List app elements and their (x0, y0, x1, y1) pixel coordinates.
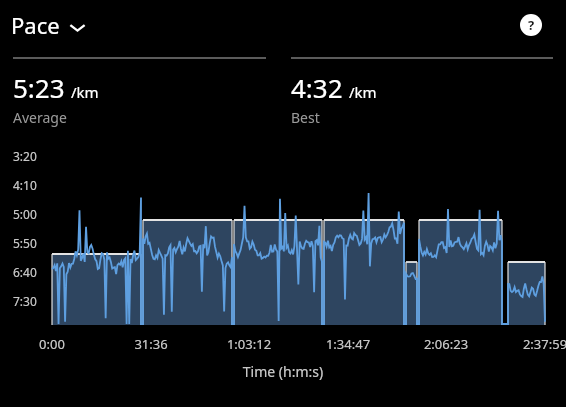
staticText: /km (349, 82, 377, 102)
staticText: 4:10 (13, 177, 37, 193)
staticText: 1:34:47 (316, 335, 380, 353)
staticText: 3:20 (13, 148, 37, 164)
button[interactable]: 5:23 (13, 57, 266, 127)
staticText: 5:23 (13, 70, 65, 105)
staticText: 4:32 (291, 70, 343, 105)
staticText: 1:03:12 (217, 335, 281, 353)
staticText: 31:36 (119, 335, 183, 353)
staticText: 2:37:59 (513, 335, 566, 353)
staticText: 0:00 (20, 335, 84, 353)
staticText: Best (291, 108, 320, 127)
button[interactable]: Pace (11, 7, 90, 43)
staticText: /km (71, 82, 99, 102)
staticText: Time (h:m:s) (0, 362, 566, 381)
button[interactable]: Help (518, 12, 544, 38)
staticText: 6:40 (13, 264, 37, 280)
staticText: 7:30 (13, 293, 37, 309)
staticText: Average (13, 108, 67, 127)
staticText: 2:06:23 (414, 335, 478, 353)
staticText: 5:50 (13, 235, 37, 251)
staticText: 5:00 (13, 206, 37, 222)
staticText: Pace (11, 10, 60, 40)
button[interactable]: 4:32 (291, 57, 553, 127)
staticText: ? (528, 16, 535, 34)
